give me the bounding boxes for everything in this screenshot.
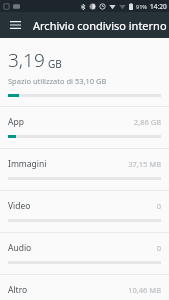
staticText: App [8, 116, 133, 128]
staticText: 37,15 MB [128, 159, 161, 169]
staticText: Immagini [8, 158, 128, 170]
button[interactable]: Open navigation drawer [4, 14, 26, 36]
staticText: Video [8, 200, 156, 212]
staticText: GB [48, 57, 62, 71]
staticText: Altro [8, 284, 128, 296]
staticText: 2,86 GB [133, 117, 161, 127]
staticText: 14:20 [150, 2, 167, 11]
button[interactable]: Audio [0, 232, 169, 274]
staticText: 10,46 MB [128, 285, 161, 295]
staticText: 0 [156, 243, 161, 253]
button[interactable]: Video [0, 190, 169, 232]
button[interactable]: App [0, 106, 169, 148]
staticText: Archivio condiviso interno [33, 18, 167, 33]
staticText: 3,19 [8, 47, 45, 73]
staticText: 91% [136, 3, 147, 10]
button[interactable]: Altro [0, 274, 169, 300]
staticText: Audio [8, 242, 156, 254]
button[interactable]: Immagini [0, 148, 169, 190]
staticText: 0 [156, 201, 161, 211]
staticText: Spazio utilizzato di 53,10 GB [8, 76, 107, 86]
